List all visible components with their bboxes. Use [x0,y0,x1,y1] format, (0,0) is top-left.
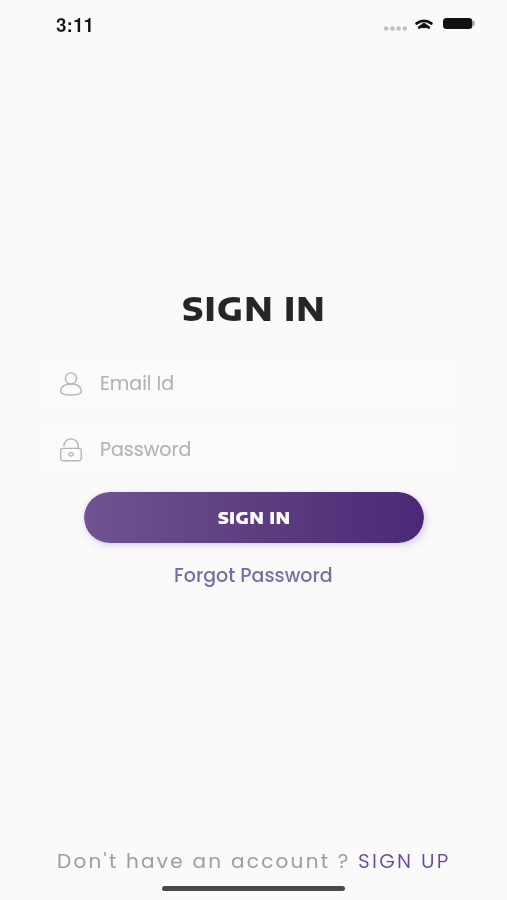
staticText: Email Id [100,370,175,397]
staticText: SIGN IN [218,508,291,528]
staticText: SIGN IN [182,288,326,328]
button[interactable]: Password field [45,426,455,472]
staticText: Don't have an account ? SIGN UP [57,847,451,875]
button[interactable]: SIGN IN [84,492,424,543]
staticText: Forgot Password [174,562,333,589]
button[interactable]: Email Id field [45,360,455,406]
button[interactable]: Forgot Password [166,559,341,592]
button[interactable]: Don't have an account ? SIGN UP [57,847,451,875]
staticText: Password [100,436,192,463]
staticText: 3:11 [56,11,95,38]
